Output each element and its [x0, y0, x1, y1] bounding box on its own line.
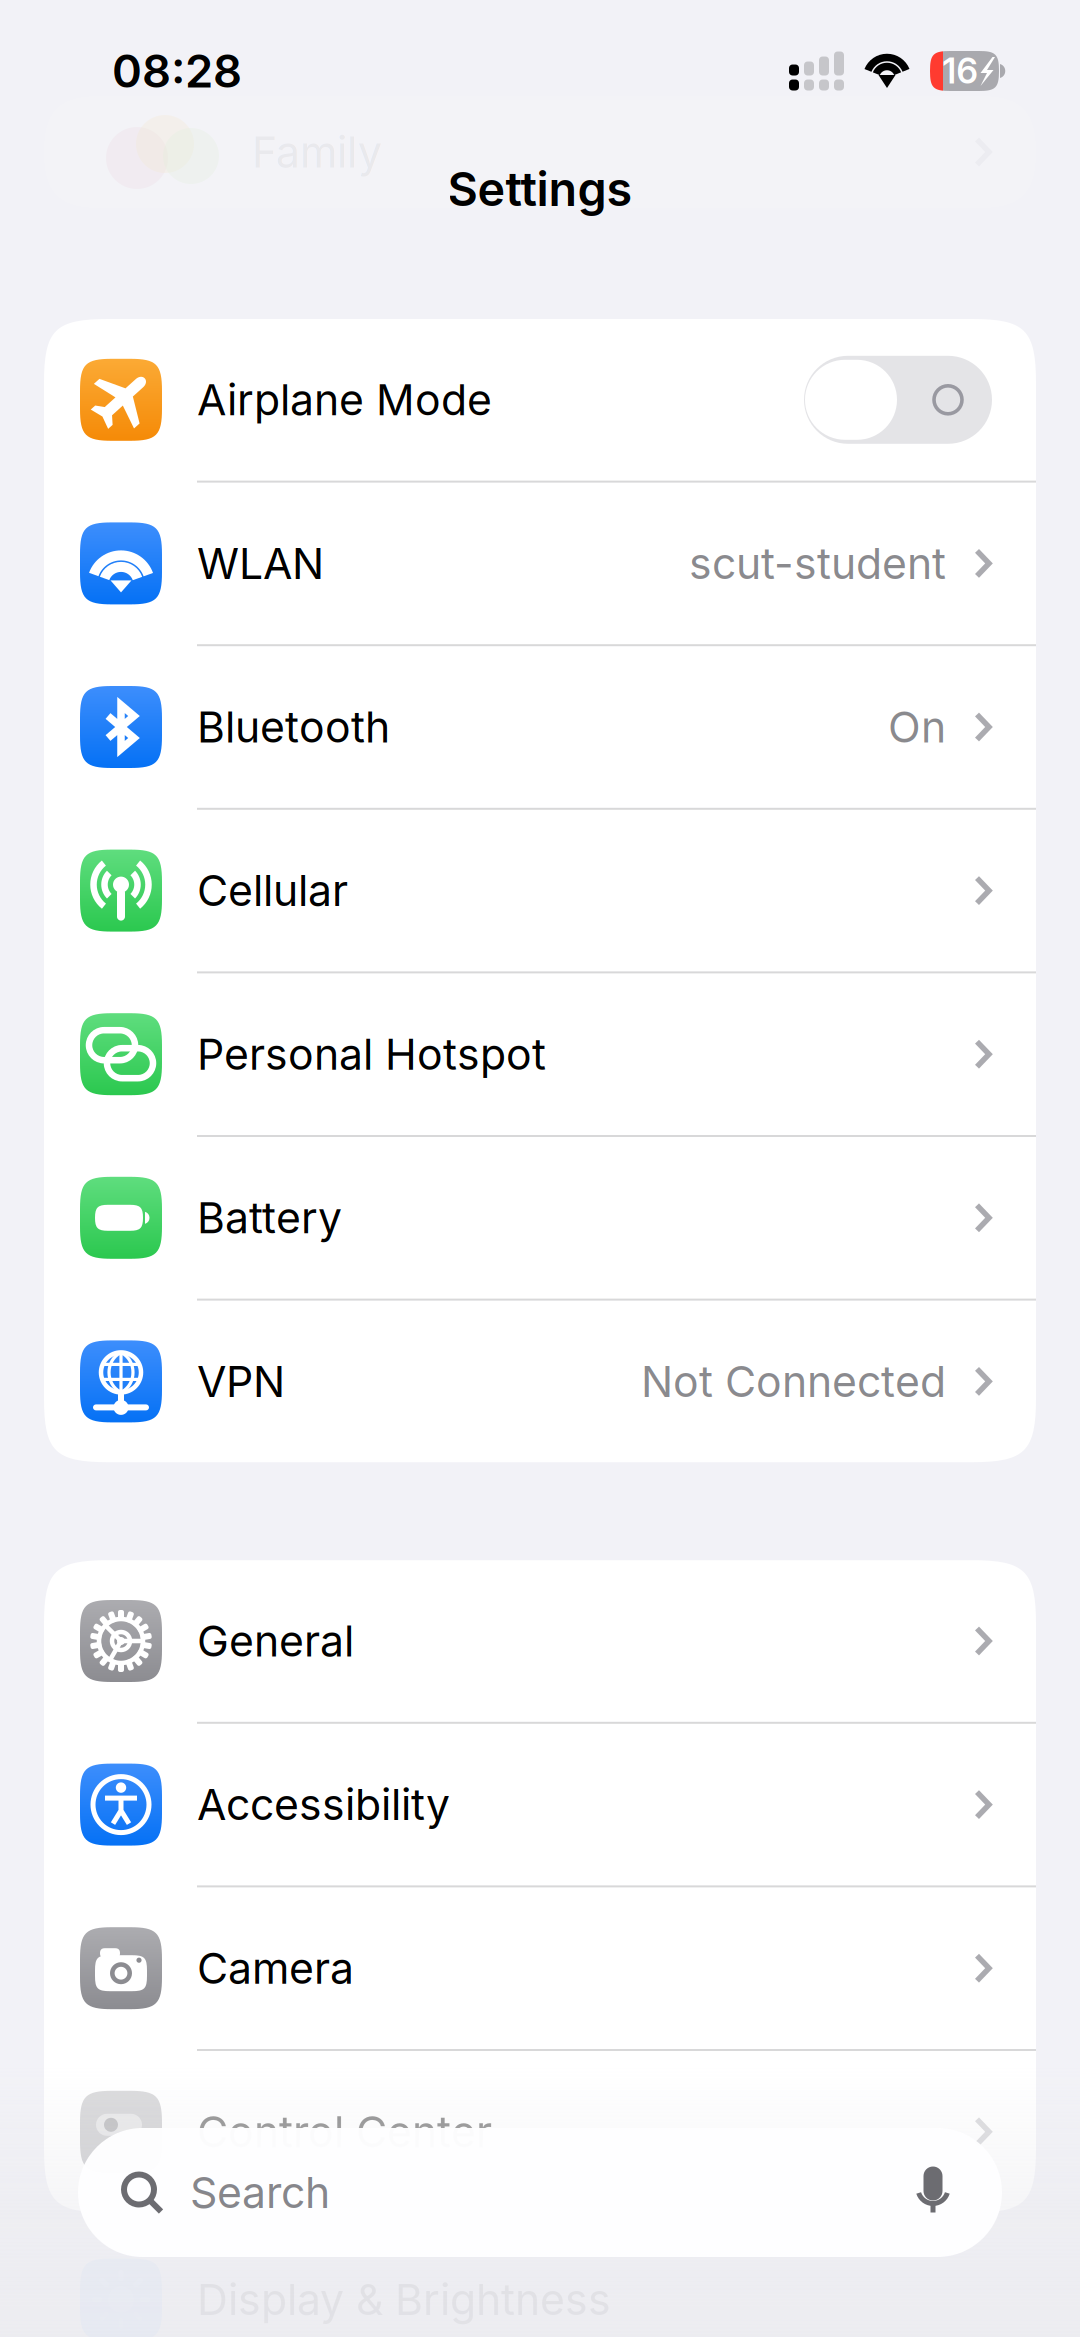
staticText: Family: [252, 126, 382, 178]
button[interactable]: Camera: [44, 1887, 1036, 2049]
staticText: WLAN: [197, 538, 324, 589]
button[interactable]: General: [44, 1560, 1036, 1722]
staticText: Bluetooth: [197, 701, 390, 753]
staticText: Battery: [197, 1192, 342, 1244]
button[interactable]: Cellular: [44, 810, 1036, 971]
button[interactable]: Accessibility: [44, 1724, 1036, 1885]
staticText: 08:28: [112, 44, 242, 98]
staticText: Display & Brightness: [197, 2274, 611, 2325]
staticText: Accessibility: [197, 1779, 450, 1830]
staticText: Search: [190, 2167, 330, 2218]
staticText: scut-student: [689, 538, 946, 589]
staticText: VPN: [197, 1356, 285, 1407]
button[interactable]: Family: [0, 96, 1080, 208]
button[interactable]: Battery: [44, 1137, 1036, 1299]
staticText: Personal Hotspot: [197, 1028, 546, 1080]
button[interactable]: Search: [78, 2128, 1002, 2257]
staticText: On: [888, 701, 946, 753]
staticText: Control Center: [197, 2106, 492, 2158]
button[interactable]: Control Center: [44, 2051, 1036, 2213]
button[interactable]: WLAN: [44, 483, 1036, 644]
staticText: General: [197, 1615, 354, 1667]
button[interactable]: Personal Hotspot: [44, 973, 1036, 1135]
staticText: Cellular: [197, 865, 348, 916]
staticText: Camera: [197, 1942, 354, 1994]
button[interactable]: Airplane Mode: [44, 319, 1036, 481]
button[interactable]: Bluetooth: [44, 646, 1036, 808]
button[interactable]: VPN: [44, 1301, 1036, 1462]
staticText: Not Connected: [641, 1356, 946, 1407]
staticText: Airplane Mode: [197, 374, 492, 426]
staticText: Settings: [447, 161, 632, 217]
staticText: 16: [942, 50, 977, 92]
